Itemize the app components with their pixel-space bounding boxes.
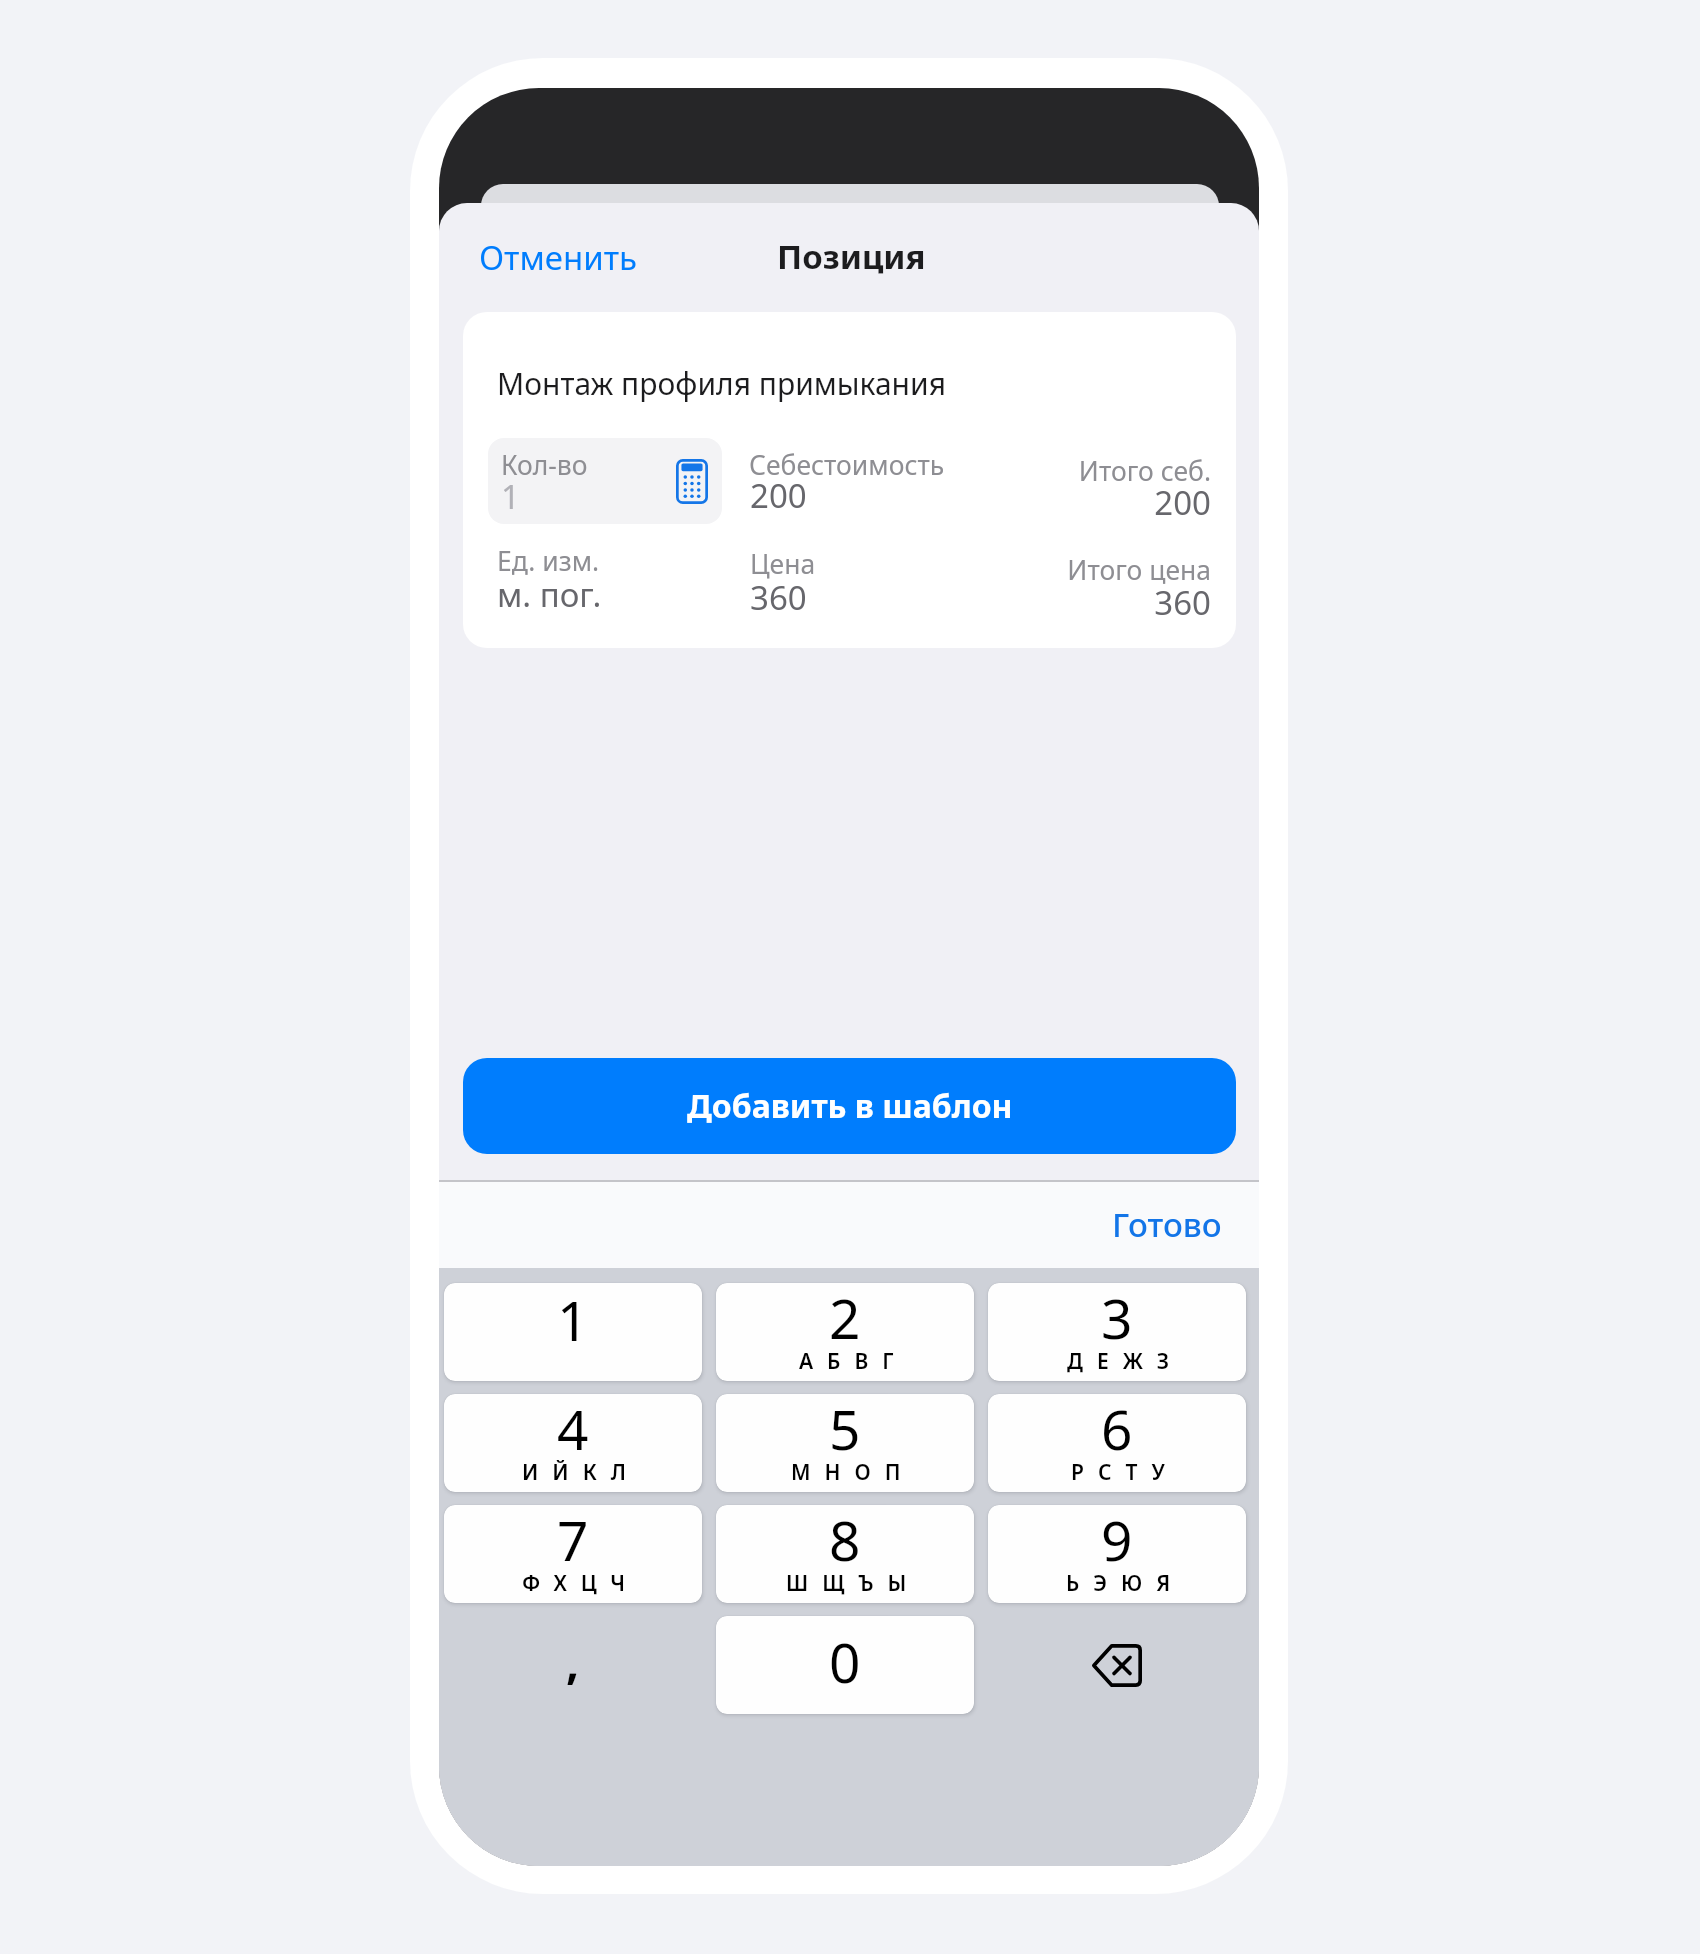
staticText: Итого цена [911,552,1211,588]
staticText: 360 [750,575,807,620]
staticText: м. пог. [497,572,602,617]
staticText: Готово [1112,1202,1222,1247]
staticText: Цена [750,546,816,582]
button[interactable]: Отменить [463,223,654,292]
button[interactable]: 4 [444,1394,702,1492]
staticText: 9 [1101,1505,1133,1577]
staticText: 2 [829,1283,861,1355]
staticText: Итого себ. [911,453,1211,489]
button[interactable]: 2 [716,1283,974,1381]
staticText: 200 [911,480,1211,525]
staticText: 1 [557,1283,589,1357]
staticText: 5 [829,1394,861,1466]
staticText: 0 [829,1624,861,1699]
button[interactable]: 3 [988,1283,1246,1381]
staticText: ФХЦЧ [522,1569,640,1598]
button[interactable]: 1 [444,1283,702,1381]
button[interactable]: Добавить в шаблон [463,1058,1236,1154]
staticText: Себестоимость [749,447,945,483]
button[interactable]: , [444,1616,702,1714]
button[interactable]: 9 [988,1505,1246,1603]
staticText: Монтаж профиля примыкания [497,363,946,404]
staticText: ШЩЪЫ [786,1569,921,1598]
staticText: ИЙКЛ [522,1458,640,1487]
staticText: Отменить [479,235,638,280]
staticText: Позиция [777,234,926,279]
staticText: 3 [1101,1283,1133,1355]
staticText: , [566,1630,580,1693]
staticText: 6 [1101,1394,1133,1466]
button[interactable]: 7 [444,1505,702,1603]
button[interactable]: 8 [716,1505,974,1603]
button[interactable]: Кол-во [488,438,722,524]
staticText: Кол-во [501,447,588,483]
staticText: ЬЭЮЯ [1066,1569,1185,1598]
staticText: 7 [557,1505,589,1577]
staticText: 1 [501,474,520,519]
staticText: РСТУ [1071,1458,1179,1487]
button[interactable]: 0 [716,1616,974,1714]
staticText: Ед. изм. [497,543,600,579]
staticText: Добавить в шаблон [687,1084,1013,1128]
button[interactable]: 5 [716,1394,974,1492]
button[interactable]: 6 [988,1394,1246,1492]
staticText: МНОП [791,1458,915,1487]
staticText: ДЕЖЗ [1067,1347,1184,1376]
other: Calculator [676,459,708,504]
button[interactable]: Backspace [988,1616,1246,1714]
staticText: 8 [829,1505,861,1577]
staticText: 360 [911,580,1211,625]
button[interactable]: Готово [1090,1190,1244,1259]
staticText: 200 [750,473,807,518]
staticText: 4 [557,1394,589,1466]
staticText: АБВГ [799,1347,908,1376]
